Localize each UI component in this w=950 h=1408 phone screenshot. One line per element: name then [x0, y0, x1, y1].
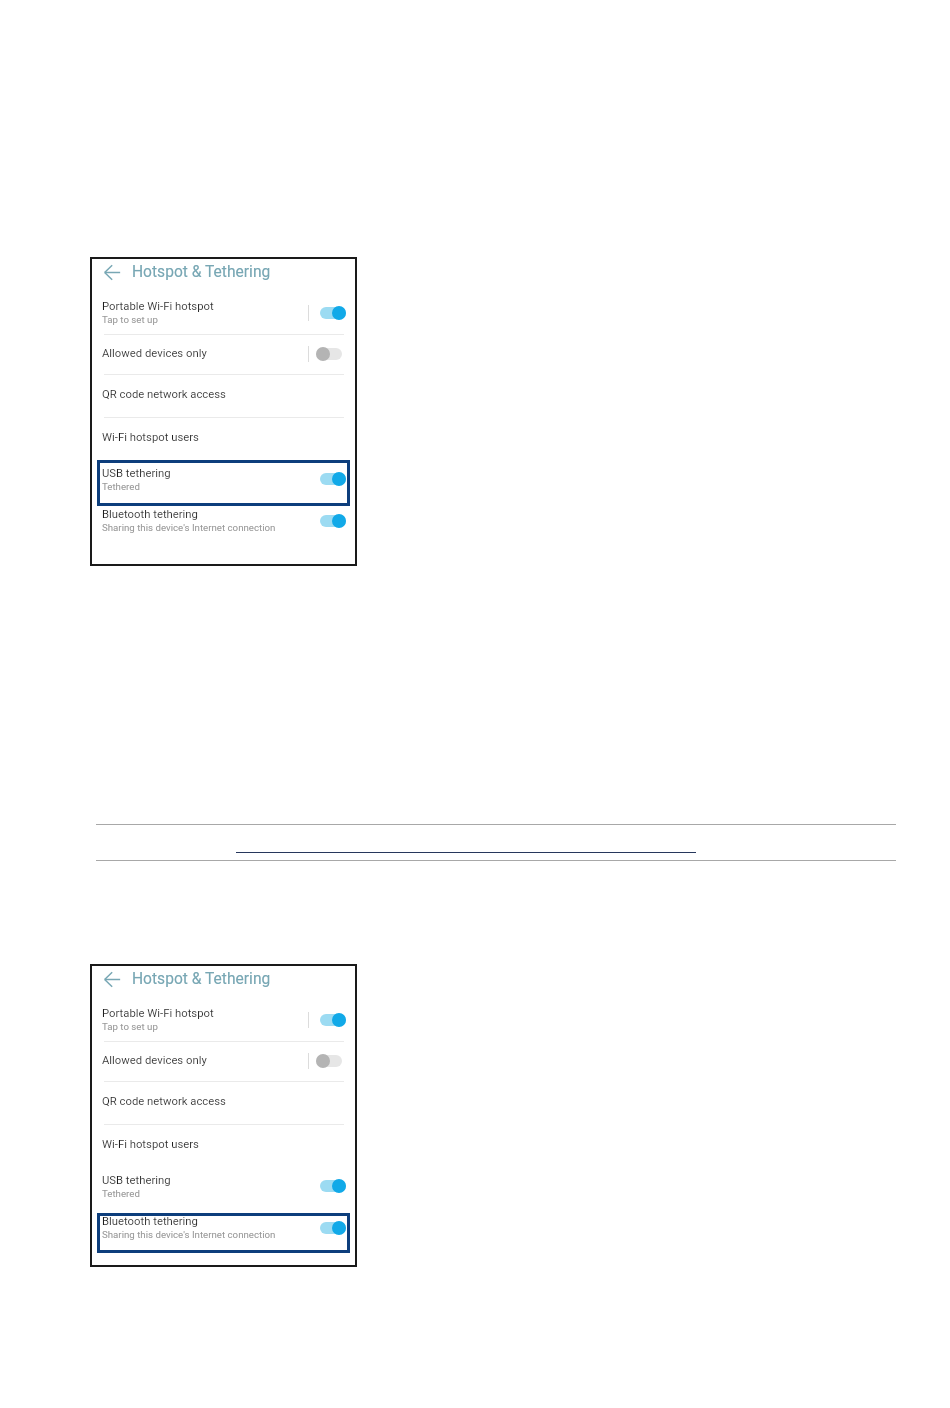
staticText: Tethered — [102, 481, 140, 492]
button[interactable]: Bluetooth tethering — [102, 1213, 346, 1253]
staticText: Hotspot & Tethering — [132, 263, 271, 281]
button[interactable]: Switch on — [320, 1013, 346, 1027]
staticText: Tap to set up — [102, 1021, 158, 1032]
staticText: Allowed devices only — [102, 1054, 207, 1067]
staticText: Wi-Fi hotspot users — [102, 1138, 199, 1151]
button[interactable]: Allowed devices only — [102, 1042, 346, 1082]
staticText: Hotspot & Tethering — [132, 970, 271, 988]
button[interactable]: USB tethering — [102, 1167, 346, 1213]
staticText: QR code network access — [102, 388, 226, 401]
staticText: Sharing this device's Internet connectio… — [102, 522, 276, 533]
staticText: USB tethering — [102, 1174, 171, 1187]
staticText: Sharing this device's Internet connectio… — [102, 1229, 276, 1240]
staticText: Wi-Fi hotspot users — [102, 431, 199, 444]
button[interactable]: Portable Wi-Fi hotspot — [102, 294, 346, 335]
button[interactable]: QR code network access — [102, 375, 346, 418]
button[interactable]: Back — [104, 259, 355, 285]
button[interactable]: Switch on — [320, 472, 346, 486]
staticText: USB tethering — [102, 467, 171, 480]
button[interactable]: Wi-Fi hotspot users — [102, 1125, 346, 1167]
button[interactable]: Bluetooth tethering — [102, 506, 346, 546]
button[interactable]: Back — [104, 971, 121, 988]
button[interactable]: Back — [104, 966, 355, 992]
button[interactable]: Switch on — [320, 514, 346, 528]
staticText: Tap to set up — [102, 314, 158, 325]
staticText: Portable Wi-Fi hotspot — [102, 1007, 214, 1020]
button[interactable]: Back — [104, 264, 121, 281]
staticText: Allowed devices only — [102, 347, 207, 360]
staticText: Bluetooth tethering — [102, 1215, 198, 1228]
button[interactable]: QR code network access — [102, 1082, 346, 1125]
button[interactable]: Switch on — [320, 1179, 346, 1193]
button[interactable]: Switch on — [320, 1221, 346, 1235]
button[interactable]: Switch on — [320, 306, 346, 320]
button[interactable]: Allowed devices only — [102, 335, 346, 375]
staticText: QR code network access — [102, 1095, 226, 1108]
staticText: Tethered — [102, 1188, 140, 1199]
button[interactable]: USB tethering — [102, 460, 346, 506]
button[interactable]: Switch off — [316, 1054, 342, 1068]
staticText: Portable Wi-Fi hotspot — [102, 300, 214, 313]
button[interactable]: Switch off — [316, 347, 342, 361]
staticText: Bluetooth tethering — [102, 508, 198, 521]
button[interactable]: Portable Wi-Fi hotspot — [102, 1001, 346, 1042]
button[interactable]: Wi-Fi hotspot users — [102, 418, 346, 460]
